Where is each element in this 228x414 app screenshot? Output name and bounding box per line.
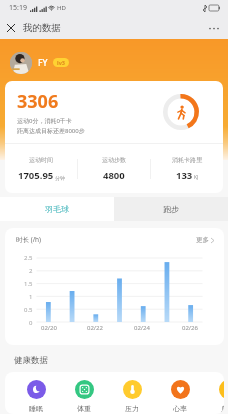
staticText: 距离达成目标还差8000步 bbox=[17, 127, 85, 135]
button[interactable]: 运动步数 bbox=[78, 144, 150, 193]
staticText: lv3 bbox=[57, 59, 65, 66]
staticText: 1 bbox=[29, 293, 33, 301]
staticText: 1705.95 bbox=[18, 169, 54, 182]
staticText: 1.5 bbox=[24, 280, 33, 288]
staticText: 02/20 bbox=[41, 324, 57, 332]
staticText: 运动步数 bbox=[102, 156, 126, 164]
staticText: 运动0分，消耗0千卡 bbox=[17, 117, 72, 125]
staticText: 压力 bbox=[125, 404, 139, 413]
button[interactable]: 体重 bbox=[60, 380, 108, 413]
staticText: 4800 bbox=[103, 169, 125, 182]
staticText: 消耗卡路里 bbox=[172, 156, 202, 164]
staticText: 2.5 bbox=[24, 254, 33, 262]
staticText: 体重 bbox=[77, 404, 91, 413]
button[interactable]: 心率 bbox=[156, 380, 204, 413]
staticText: 02/24 bbox=[134, 324, 150, 332]
staticText: FY bbox=[38, 57, 48, 69]
staticText: 更多 bbox=[196, 236, 209, 244]
button[interactable]: 睡眠 bbox=[12, 380, 60, 413]
staticText: 02/22 bbox=[87, 324, 103, 332]
staticText: 我的数据 bbox=[23, 22, 61, 34]
staticText: 心率 bbox=[173, 404, 187, 413]
button[interactable]: FY bbox=[10, 51, 228, 74]
staticText: 分钟 bbox=[55, 175, 65, 181]
button[interactable]: 消耗卡路里 bbox=[151, 144, 223, 193]
button[interactable]: 运动时间 bbox=[5, 144, 77, 193]
button[interactable]: 羽毛球 bbox=[0, 197, 114, 221]
staticText: 睡眠 bbox=[29, 404, 43, 413]
staticText: 0.5 bbox=[24, 306, 33, 314]
staticText: 133 bbox=[176, 169, 193, 182]
staticText: 2 bbox=[29, 267, 33, 275]
button[interactable]: 血氧 bbox=[204, 380, 224, 413]
staticText: 羽毛球 bbox=[45, 204, 69, 214]
staticText: 健康数据 bbox=[14, 355, 48, 366]
staticText: 跑步 bbox=[163, 204, 179, 214]
button[interactable]: 压力 bbox=[108, 380, 156, 413]
button[interactable]: 跑步 bbox=[114, 197, 228, 221]
staticText: HD bbox=[57, 4, 66, 12]
staticText: 15:19 bbox=[9, 3, 27, 13]
staticText: 3306 bbox=[17, 89, 59, 114]
staticText: 02/26 bbox=[182, 324, 198, 332]
staticText: KJ bbox=[194, 174, 199, 181]
staticText: 运动时间 bbox=[29, 156, 53, 164]
staticText: 血氧 bbox=[221, 404, 224, 413]
staticText: 时长 (/h) bbox=[16, 235, 42, 244]
button[interactable]: 更多 bbox=[196, 236, 214, 244]
button[interactable]: More options bbox=[203, 17, 225, 39]
staticText: 0 bbox=[29, 319, 33, 327]
button[interactable]: Close bbox=[0, 17, 22, 39]
